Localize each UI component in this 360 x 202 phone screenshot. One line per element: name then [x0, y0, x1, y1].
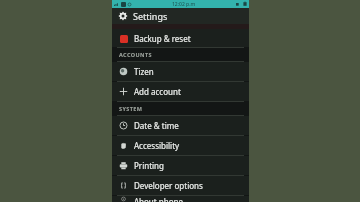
button[interactable]: Printing [112, 156, 249, 175]
button[interactable]: Date & time [112, 116, 249, 135]
staticText: ACCOUNTS [119, 51, 152, 58]
staticText: Developer options [134, 180, 203, 191]
staticText: Tizen [134, 66, 154, 77]
staticText: 12:02 p.m [172, 1, 196, 8]
button[interactable]: Tizen [112, 62, 249, 81]
button[interactable]: Settings [112, 8, 249, 24]
staticText: SYSTEM [119, 105, 143, 112]
staticText: Printing [134, 160, 164, 171]
staticText: Add account [134, 86, 181, 97]
staticText: About phone [134, 196, 183, 202]
button[interactable]: Accessibility [112, 136, 249, 155]
staticText: Accessibility [134, 140, 180, 151]
button[interactable]: Developer options [112, 176, 249, 195]
button[interactable]: Add account [112, 82, 249, 101]
staticText: Date & time [134, 120, 179, 131]
button[interactable]: Backup & reset [112, 29, 249, 47]
staticText: Settings [133, 10, 168, 22]
button[interactable]: About phone [112, 196, 249, 202]
staticText: Backup & reset [134, 33, 191, 44]
